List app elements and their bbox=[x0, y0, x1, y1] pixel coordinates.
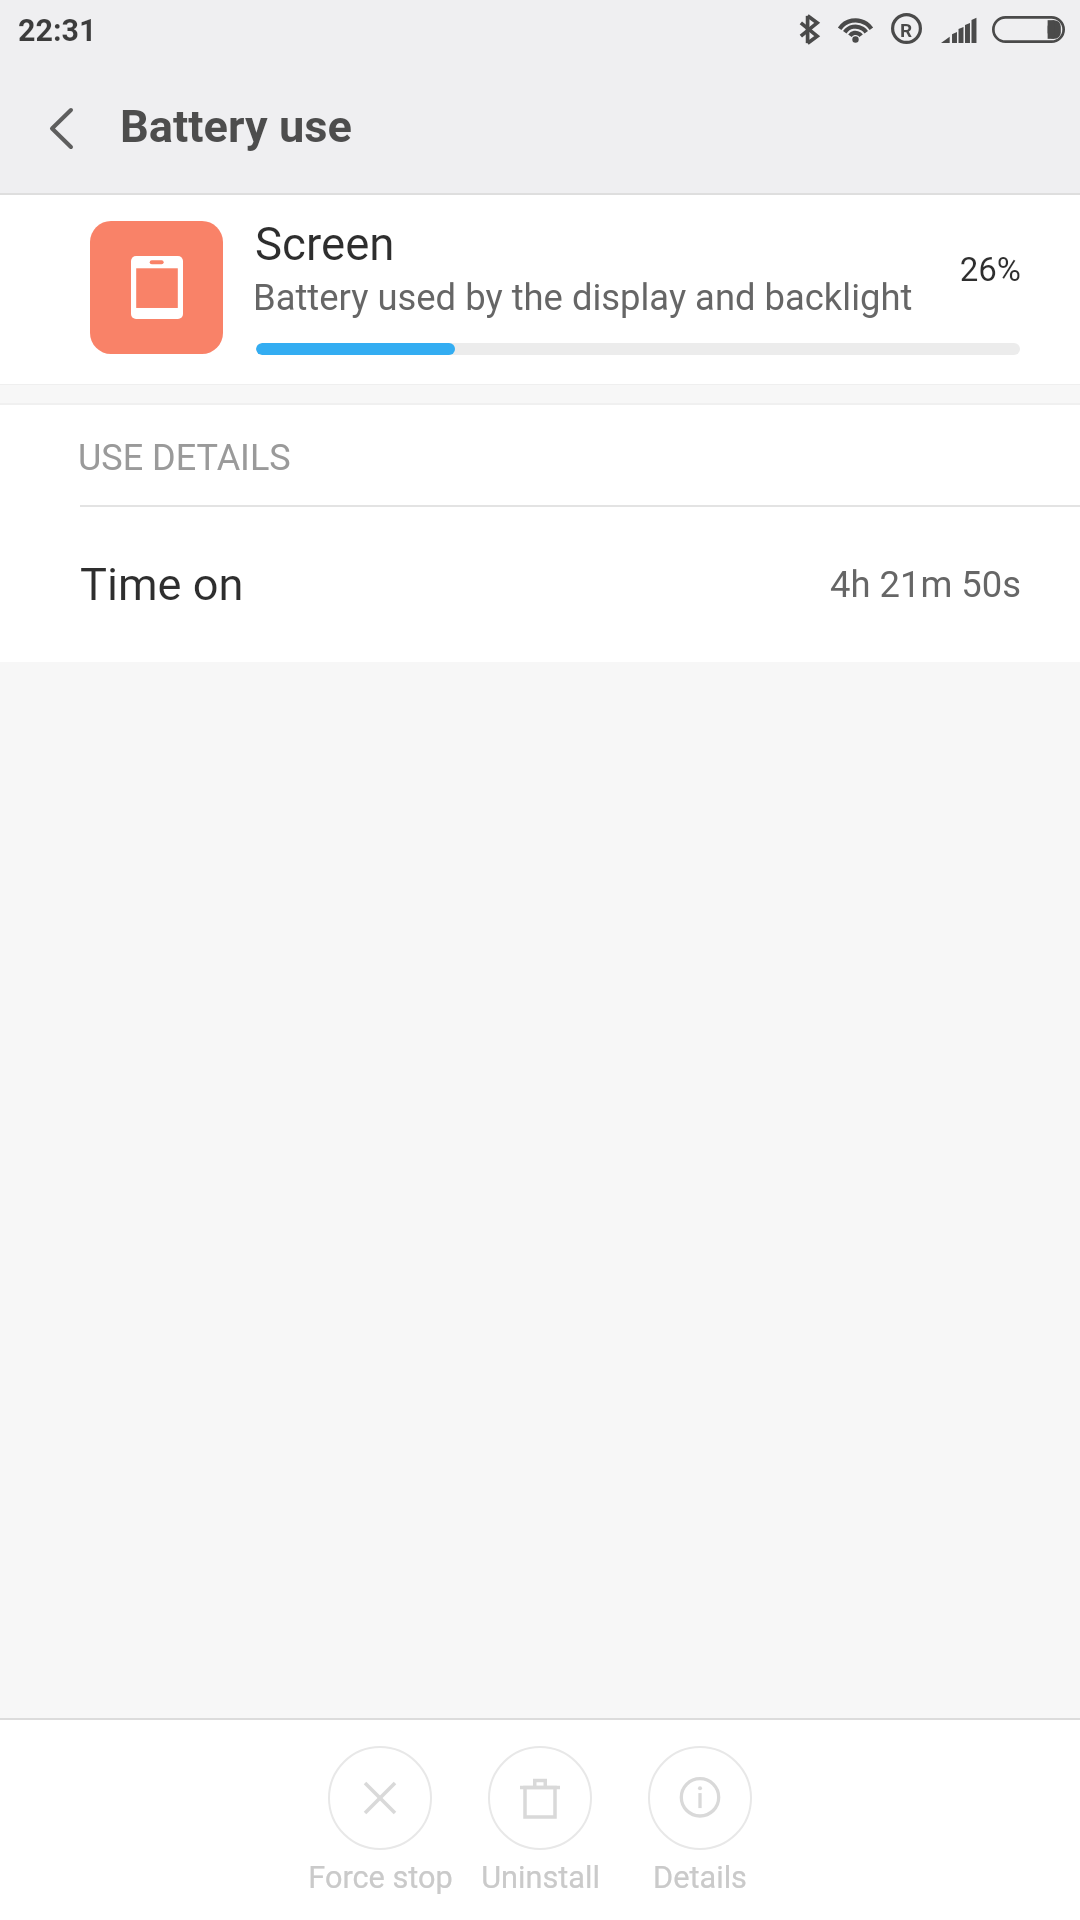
button[interactable]: Force stop bbox=[300, 1740, 460, 1900]
staticText: Uninstall bbox=[481, 1860, 600, 1896]
staticText: 26% bbox=[959, 250, 1021, 289]
staticText: Force stop bbox=[308, 1860, 453, 1896]
staticText: R bbox=[900, 19, 913, 41]
button[interactable]: Time on bbox=[0, 507, 1080, 661]
staticText: Screen bbox=[255, 218, 395, 271]
button[interactable]: Back bbox=[13, 90, 109, 167]
staticText: Battery use bbox=[120, 100, 352, 153]
staticText: Time on bbox=[80, 558, 244, 611]
staticText: 4h 21m 50s bbox=[830, 563, 1022, 606]
button[interactable]: Uninstall bbox=[460, 1740, 620, 1900]
staticText: Details bbox=[653, 1860, 747, 1896]
button[interactable]: Details bbox=[620, 1740, 780, 1900]
staticText: Battery used by the display and backligh… bbox=[253, 276, 913, 319]
staticText: USE DETAILS bbox=[78, 437, 291, 479]
staticText: 22:31 bbox=[18, 13, 97, 49]
